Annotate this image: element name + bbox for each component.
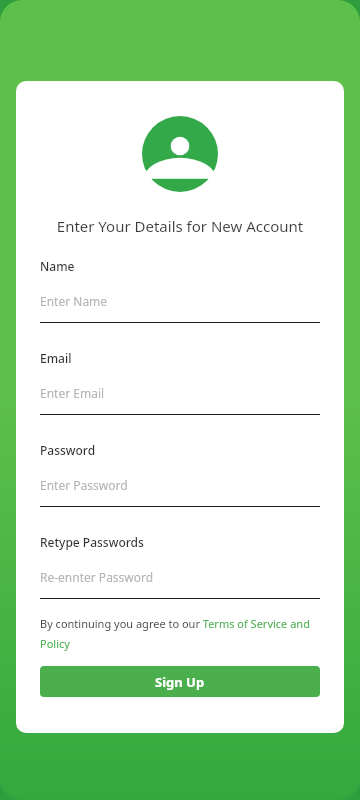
staticText: Sign Up [155,673,205,691]
staticText: Enter Your Details for New Account [40,216,320,236]
staticText: Enter Password [40,477,128,493]
staticText: Enter Email [40,385,105,401]
button[interactable]: Email [40,350,320,415]
staticText: Password [40,442,96,458]
staticText: Re-ennter Password [40,569,154,585]
button[interactable]: By continuing you agree to our Terms of … [40,616,320,651]
staticText: Retype Passwords [40,534,144,550]
staticText: Email [40,350,72,366]
staticText: Enter Name [40,293,108,309]
button[interactable]: Name [40,258,320,323]
button[interactable]: Sign Up [40,666,320,697]
button[interactable]: Password [40,442,320,507]
button[interactable]: Retype Passwords [40,534,320,599]
staticText: Name [40,258,75,274]
